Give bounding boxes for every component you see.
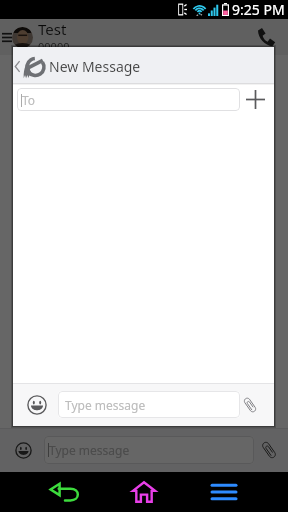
button[interactable]: Emoji	[27, 395, 47, 415]
button[interactable]: Recent apps	[200, 472, 248, 512]
button[interactable]: Emoji	[15, 442, 32, 459]
button[interactable]: Back to conversation	[13, 47, 274, 84]
staticText: Type message	[49, 442, 130, 458]
button[interactable]: Add recipient	[241, 85, 269, 113]
button[interactable]: Menu	[0, 30, 14, 44]
staticText: Test	[38, 19, 67, 39]
button[interactable]: Call	[252, 23, 280, 51]
button[interactable]	[12, 27, 33, 48]
button[interactable]: Type message	[58, 391, 240, 418]
staticText: 9:25 PM	[232, 0, 285, 19]
button[interactable]: Attach	[260, 441, 278, 459]
button[interactable]: Attach	[238, 393, 262, 417]
staticText: 00000	[38, 39, 70, 54]
staticText: To	[22, 92, 36, 108]
staticText: Type message	[65, 397, 146, 413]
button[interactable]: Back	[40, 472, 89, 512]
button[interactable]: Type message	[44, 436, 254, 464]
button[interactable]: Home	[120, 472, 168, 512]
staticText: New Message	[49, 57, 141, 76]
